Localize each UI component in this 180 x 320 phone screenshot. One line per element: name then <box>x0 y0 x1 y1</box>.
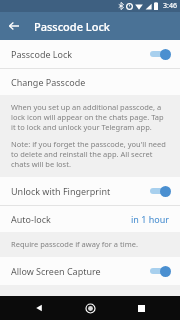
button[interactable]: Back <box>27 296 51 320</box>
button[interactable]: Back <box>0 12 28 40</box>
button[interactable]: Change Passcode <box>0 69 180 95</box>
button[interactable]: Toggle <box>149 264 171 278</box>
button[interactable]: Recent apps <box>129 296 153 320</box>
button[interactable]: Toggle <box>149 184 171 198</box>
button[interactable]: Toggle <box>149 47 171 61</box>
button[interactable]: Allow Screen Capture <box>0 257 180 285</box>
staticText: When you set up an additional passcode, … <box>11 102 169 132</box>
staticText: 3:46 <box>163 1 177 11</box>
staticText: Change Passcode <box>11 76 86 88</box>
button[interactable]: Passcode Lock <box>0 40 180 68</box>
staticText: in 1 hour <box>131 213 169 225</box>
staticText: Unlock with Fingerprint <box>11 185 149 197</box>
staticText: Require passcode if away for a time. <box>11 239 138 249</box>
button[interactable]: Auto-lock <box>0 206 180 232</box>
button[interactable]: Unlock with Fingerprint <box>0 177 180 205</box>
staticText: Note: if you forget the passcode, you'll… <box>11 139 169 169</box>
staticText: Passcode Lock <box>11 48 149 60</box>
staticText: Auto-lock <box>11 213 131 225</box>
staticText: Passcode Lock <box>34 19 110 34</box>
staticText: Allow Screen Capture <box>11 265 149 277</box>
button[interactable]: Home <box>78 296 102 320</box>
